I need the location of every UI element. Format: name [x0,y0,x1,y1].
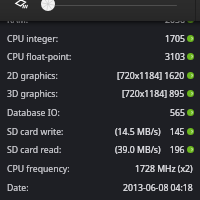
staticText: (39.0 MB/s) 196 [115,144,185,156]
button[interactable]: RAM: [0,10,200,29]
staticText: 1705 [165,33,185,45]
staticText: 2D graphics: [7,70,58,82]
staticText: CPU integer: [7,33,59,45]
button[interactable]: CPU frequency: [0,159,200,178]
staticText: 2056 [165,14,185,26]
staticText: 2013-06-08 04:18 [123,182,193,194]
button[interactable]: Benchmark score [41,0,55,11]
button[interactable]: CPU float-point: [0,47,200,66]
button[interactable]: SD card read: [0,140,200,159]
staticText: SD card write: [7,126,64,138]
staticText: [720x1184] 1620 [117,70,185,82]
button[interactable]: Date: [0,178,200,197]
staticText: 3D graphics: [7,88,58,100]
staticText: CPU frequency: [7,163,70,175]
button[interactable]: SD card write: [0,122,200,141]
button[interactable]: 3D graphics: [0,84,200,103]
staticText: CPU float-point: [7,51,72,63]
staticText: Database IO: [7,107,60,119]
staticText: 3103 [165,51,185,63]
staticText: RAM: [7,14,29,26]
staticText: 565 [170,107,185,119]
staticText: 1728 MHz (x2) [135,163,193,175]
button[interactable]: Database IO: [0,103,200,122]
button[interactable]: CPU integer: [0,29,200,48]
button[interactable]: 2D graphics: [0,66,200,85]
button[interactable]: App icon [14,0,28,13]
staticText: (14.5 MB/s) 145 [115,126,185,138]
staticText: [720x1184] 895 [122,88,185,100]
staticText: SD card read: [7,144,62,156]
staticText: Date: [7,182,29,194]
